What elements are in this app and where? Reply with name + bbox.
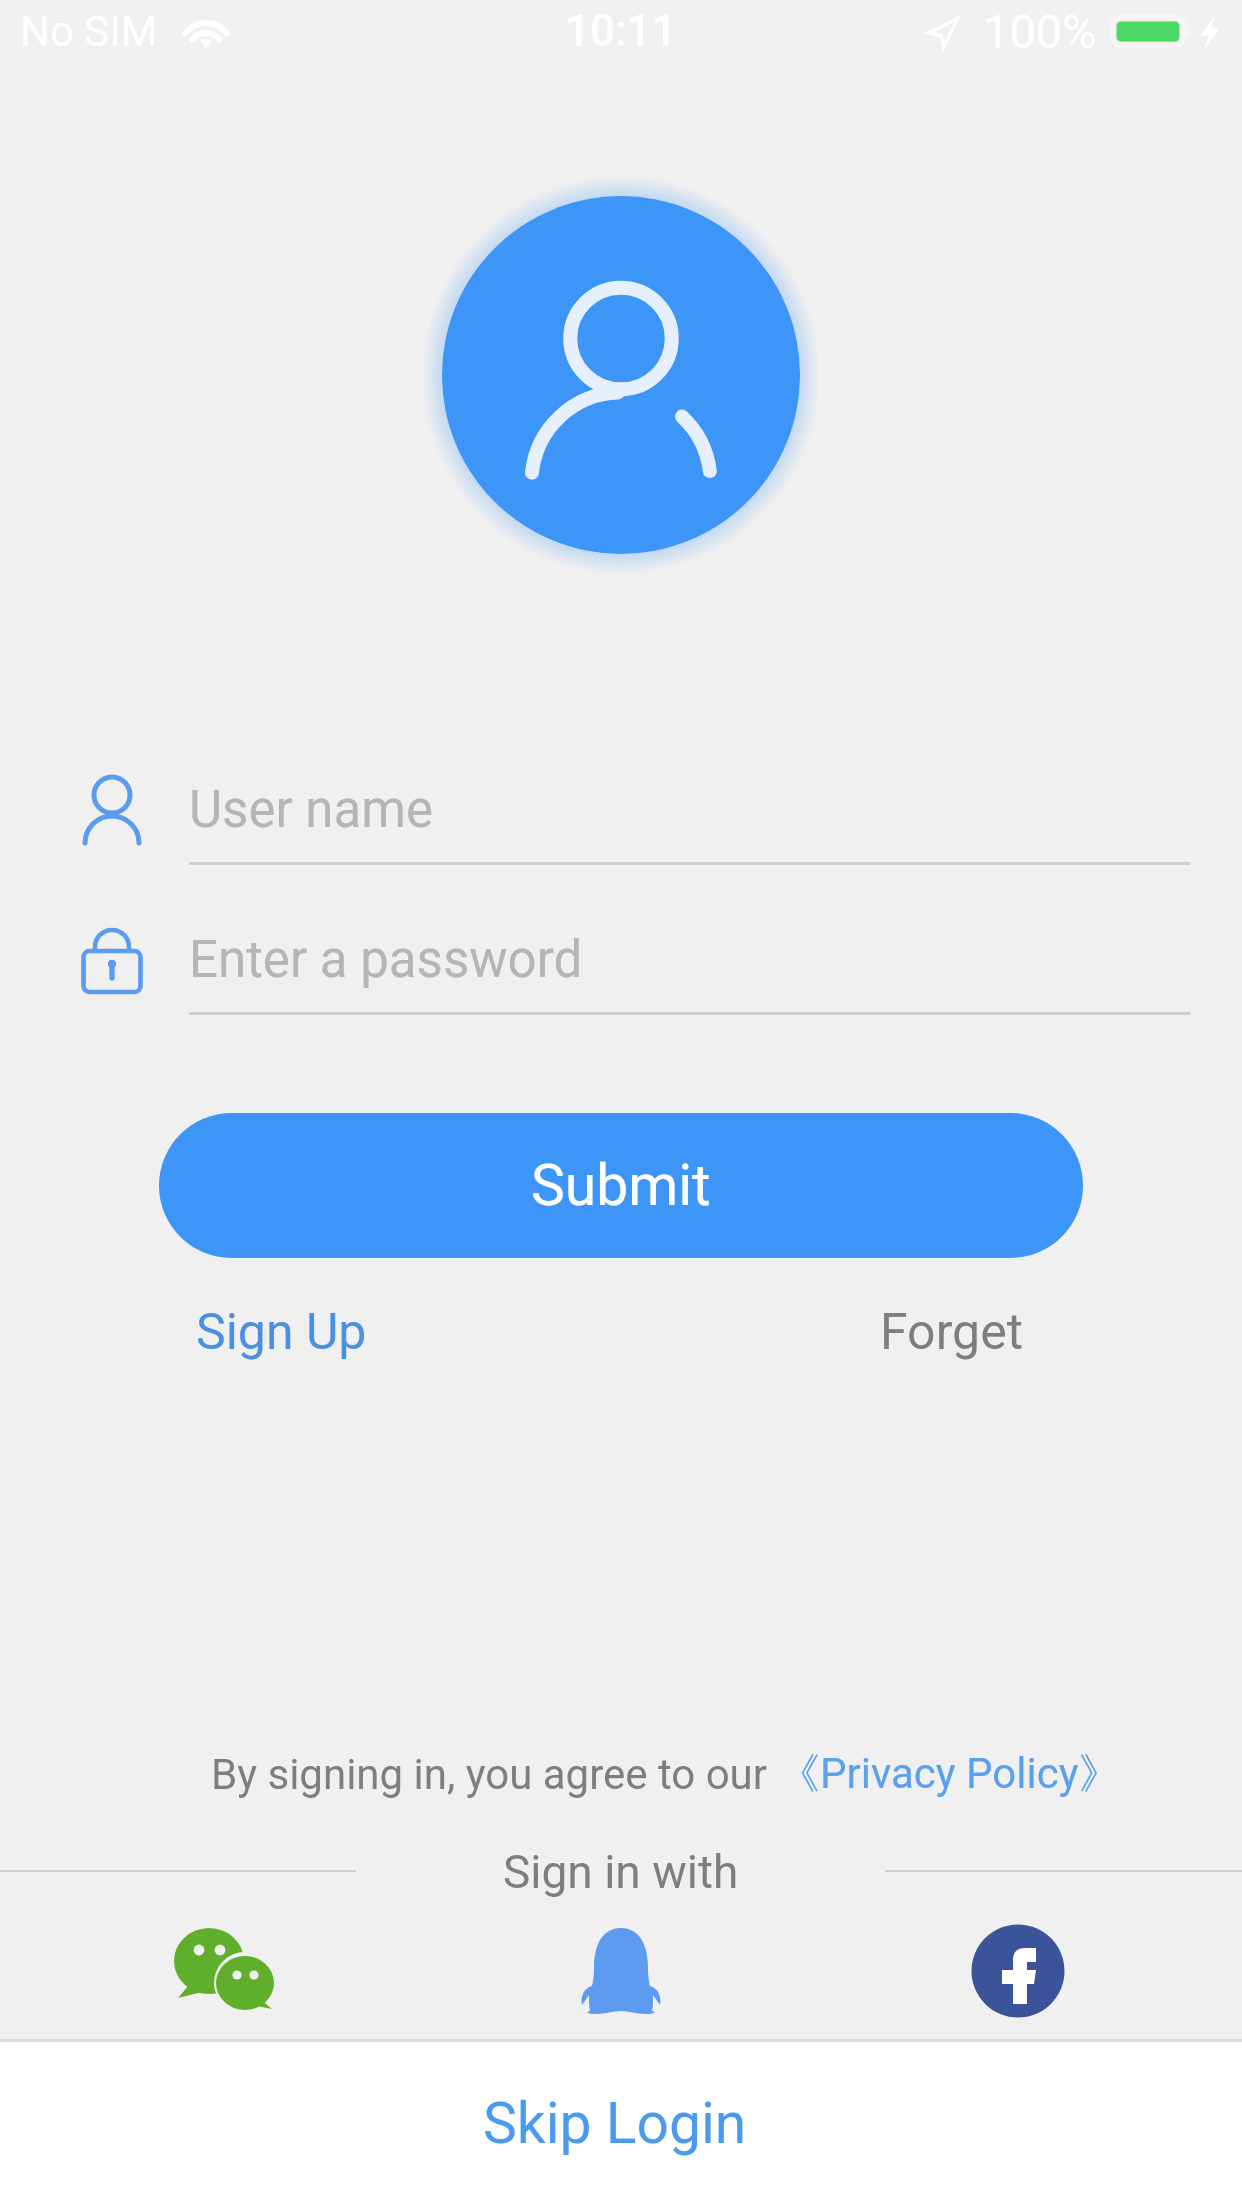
button[interactable]: Forget (874, 1296, 1030, 1368)
staticText: 10:11 (565, 5, 677, 57)
staticText: By signing in, you agree to our (211, 1750, 778, 1799)
staticText: 《Privacy Policy》 (778, 1748, 1121, 1801)
button[interactable]: 《Privacy Policy》 (778, 1748, 1121, 1801)
button[interactable]: Submit (159, 1113, 1083, 1258)
staticText: Submit (531, 1152, 711, 1219)
button[interactable]: Sign in with Facebook (913, 1866, 1123, 2076)
staticText: User name (189, 780, 434, 840)
staticText: No SIM (20, 7, 158, 56)
staticText: Skip Login (483, 2090, 747, 2157)
staticText: Sign Up (196, 1303, 367, 1362)
staticText: Enter a password (189, 930, 583, 990)
button[interactable]: Sign in with WeChat (121, 1866, 331, 2076)
button[interactable]: User name (189, 762, 1190, 862)
button[interactable]: Sign Up (190, 1296, 373, 1368)
staticText: Forget (880, 1303, 1024, 1362)
staticText: Sign in with (503, 1845, 739, 1899)
staticText: 100% (983, 4, 1097, 59)
button[interactable]: Enter a password (189, 912, 1190, 1012)
button[interactable]: Sign in with QQ (516, 1866, 726, 2076)
button[interactable]: Skip Login (0, 2042, 1242, 2208)
